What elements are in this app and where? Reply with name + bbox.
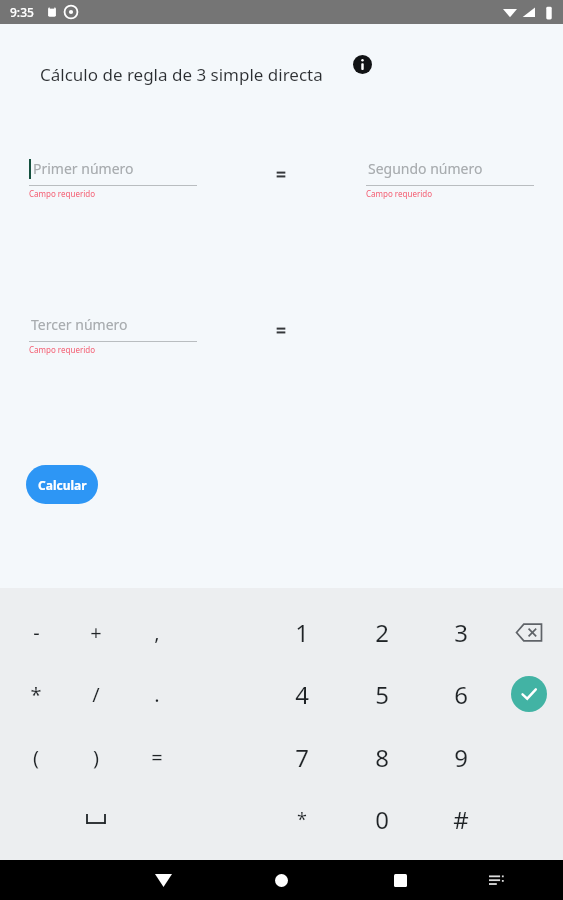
button[interactable]: *: [274, 791, 330, 847]
staticText: Cálculo de regla de 3 simple directa: [40, 63, 323, 86]
button[interactable]: 3: [433, 604, 489, 660]
button[interactable]: +: [68, 604, 124, 660]
button[interactable]: 7: [274, 729, 330, 785]
button[interactable]: Cambiar teclado: [474, 860, 518, 900]
staticText: Campo requerido: [366, 188, 433, 199]
button[interactable]: Borrar: [507, 610, 551, 654]
staticText: =: [151, 744, 163, 771]
button[interactable]: Calcular: [26, 465, 98, 504]
staticText: ): [93, 744, 99, 771]
staticText: 2: [375, 616, 389, 649]
staticText: 6: [454, 678, 468, 711]
staticText: 9: [454, 741, 468, 774]
staticText: 7: [295, 741, 309, 774]
staticText: 3: [454, 616, 468, 649]
button[interactable]: /: [68, 666, 124, 722]
button[interactable]: Inicio: [259, 860, 303, 900]
button[interactable]: 4: [274, 666, 330, 722]
staticText: 5: [375, 678, 389, 711]
button[interactable]: 2: [354, 604, 410, 660]
staticText: 9:35: [10, 4, 34, 20]
button[interactable]: (: [8, 729, 64, 785]
staticText: 8: [375, 741, 389, 774]
button[interactable]: Espacio: [68, 791, 124, 847]
staticText: Campo requerido: [29, 344, 96, 355]
button[interactable]: Aceptar: [507, 672, 551, 716]
staticText: .: [154, 681, 160, 708]
button[interactable]: Segundo número: [366, 155, 534, 203]
staticText: 0: [375, 803, 389, 836]
button[interactable]: 8: [354, 729, 410, 785]
button[interactable]: 5: [354, 666, 410, 722]
staticText: (: [33, 744, 39, 771]
button[interactable]: =: [129, 729, 185, 785]
button[interactable]: 9: [433, 729, 489, 785]
staticText: 4: [295, 678, 309, 711]
button[interactable]: Recientes: [378, 860, 422, 900]
staticText: Tercer número: [31, 315, 128, 334]
staticText: -: [33, 619, 40, 646]
button[interactable]: Información: [351, 53, 373, 75]
button[interactable]: -: [8, 604, 64, 660]
button[interactable]: ,: [129, 604, 185, 660]
button[interactable]: #: [433, 791, 489, 847]
staticText: *: [30, 681, 42, 708]
staticText: 1: [295, 616, 309, 649]
button[interactable]: Primer número: [29, 155, 197, 203]
staticText: *: [297, 807, 307, 832]
button[interactable]: Tercer número: [29, 311, 197, 359]
button[interactable]: 1: [274, 604, 330, 660]
button[interactable]: .: [129, 666, 185, 722]
button[interactable]: *: [8, 666, 64, 722]
staticText: Calcular: [38, 477, 87, 493]
staticText: Segundo número: [368, 159, 483, 178]
button[interactable]: 6: [433, 666, 489, 722]
button[interactable]: Atrás: [141, 860, 185, 900]
staticText: #: [453, 803, 469, 836]
staticText: +: [90, 619, 102, 646]
button[interactable]: ): [68, 729, 124, 785]
staticText: ,: [154, 619, 160, 646]
staticText: Campo requerido: [29, 188, 96, 199]
staticText: Primer número: [33, 159, 134, 178]
button[interactable]: 0: [354, 791, 410, 847]
staticText: /: [92, 681, 100, 708]
